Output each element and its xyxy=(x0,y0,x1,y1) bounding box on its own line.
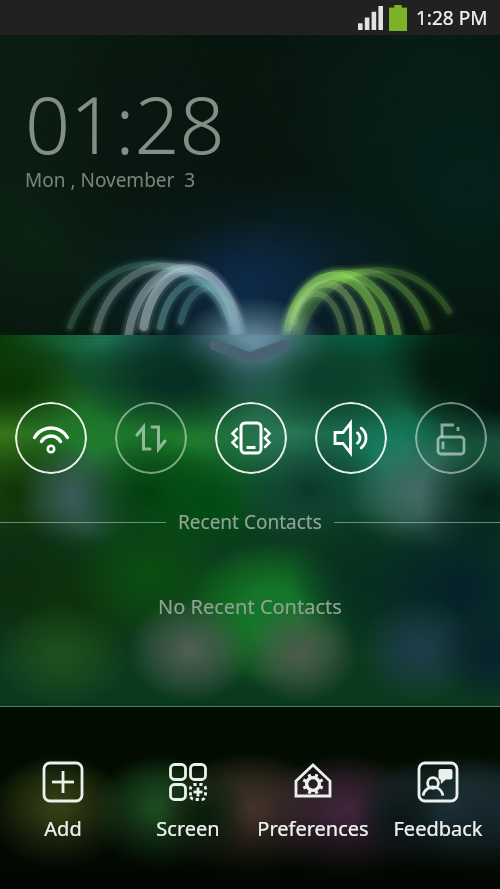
button[interactable]: Sound xyxy=(315,402,387,474)
button[interactable]: Feedback xyxy=(375,707,500,889)
staticText: No Recent Contacts xyxy=(158,593,342,620)
staticText: Preferences xyxy=(257,815,369,842)
staticText: Feedback xyxy=(393,815,483,842)
staticText: Screen xyxy=(156,815,220,842)
button[interactable]: Preferences xyxy=(250,707,375,889)
staticText: Add xyxy=(44,815,82,842)
button[interactable]: Vibrate xyxy=(215,402,287,474)
button[interactable]: Add xyxy=(0,707,125,889)
staticText: 1:28 PM xyxy=(416,5,488,31)
button[interactable]: Wi-Fi xyxy=(15,402,87,474)
staticText: 01:28 xyxy=(25,70,225,178)
staticText: Mon , November 3 xyxy=(25,167,196,193)
button[interactable]: Mobile data xyxy=(115,402,187,474)
button[interactable]: Lock xyxy=(415,402,487,474)
button[interactable]: Screen xyxy=(125,707,250,889)
staticText: Recent Contacts xyxy=(178,509,322,535)
